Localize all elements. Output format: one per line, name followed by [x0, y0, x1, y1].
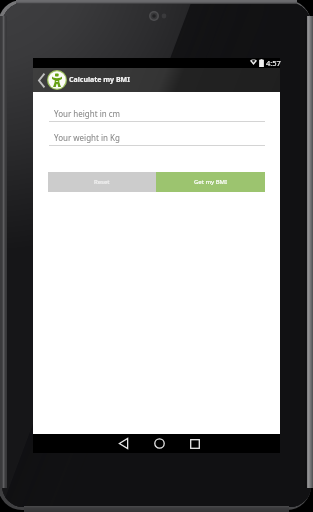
staticText: Reset	[94, 178, 110, 186]
button[interactable]: Recent apps	[183, 434, 207, 453]
staticText: Your height in cm	[54, 108, 121, 119]
button[interactable]: Your height in cm	[49, 108, 265, 122]
staticText: Calculate my BMI	[69, 75, 130, 85]
button[interactable]: Back	[111, 434, 135, 453]
button[interactable]: Reset	[48, 172, 156, 192]
staticText: Get my BMI	[194, 178, 228, 186]
button[interactable]: Your weight in Kg	[49, 132, 265, 146]
staticText: 4:57	[266, 58, 281, 68]
button[interactable]: Home	[147, 434, 171, 453]
button[interactable]: Get my BMI	[156, 172, 265, 192]
button[interactable]: Navigate up	[34, 70, 48, 90]
staticText: Your weight in Kg	[54, 132, 120, 143]
